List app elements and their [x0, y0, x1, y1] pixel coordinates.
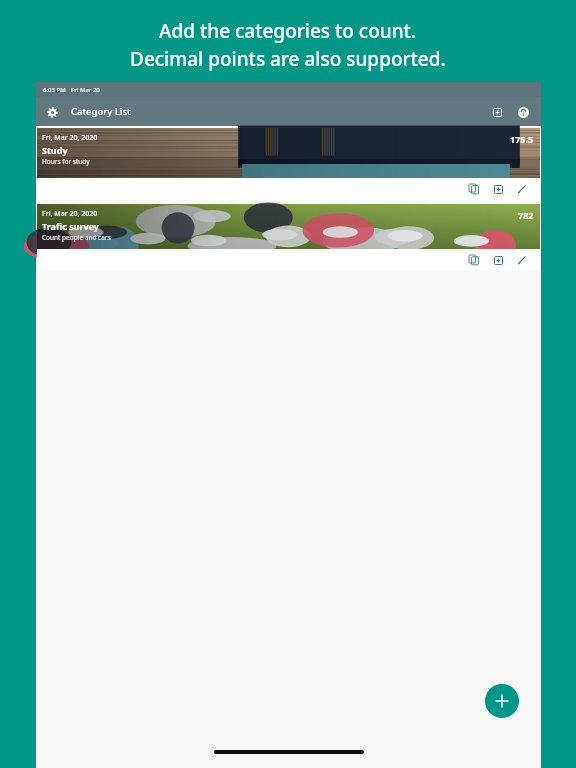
button[interactable]: Add category [485, 684, 519, 718]
staticText: Fri, Mar 20, 2020 [42, 133, 98, 143]
button[interactable]: Edit [512, 179, 532, 199]
button[interactable]: Export [488, 250, 508, 270]
staticText: Decimal points are also supported. [130, 46, 446, 72]
button[interactable]: Export all [487, 102, 507, 122]
staticText: 782 [518, 209, 534, 221]
button[interactable]: Edit [512, 250, 532, 270]
staticText: Hours for study [42, 157, 90, 166]
button[interactable]: Export [488, 179, 508, 199]
staticText: Trafic survey [42, 220, 99, 232]
staticText: 6:03 PM [43, 86, 66, 94]
staticText: Count people and cars [42, 233, 111, 242]
staticText: 175.5 [510, 133, 534, 145]
button[interactable]: Settings [42, 102, 62, 122]
button[interactable]: Duplicate [464, 250, 484, 270]
button[interactable]: Fri, Mar 20, 2020 [37, 204, 540, 271]
staticText: Fri Mar 20 [71, 86, 100, 94]
button[interactable]: Duplicate [464, 179, 484, 199]
staticText: Category List [71, 105, 131, 118]
staticText: Add the categories to count. [159, 18, 417, 44]
staticText: Fri, Mar 20, 2020 [42, 209, 98, 219]
staticText: Study [42, 144, 68, 156]
button[interactable]: Fri, Mar 20, 2020 [37, 128, 540, 200]
button[interactable]: Help [513, 102, 533, 122]
